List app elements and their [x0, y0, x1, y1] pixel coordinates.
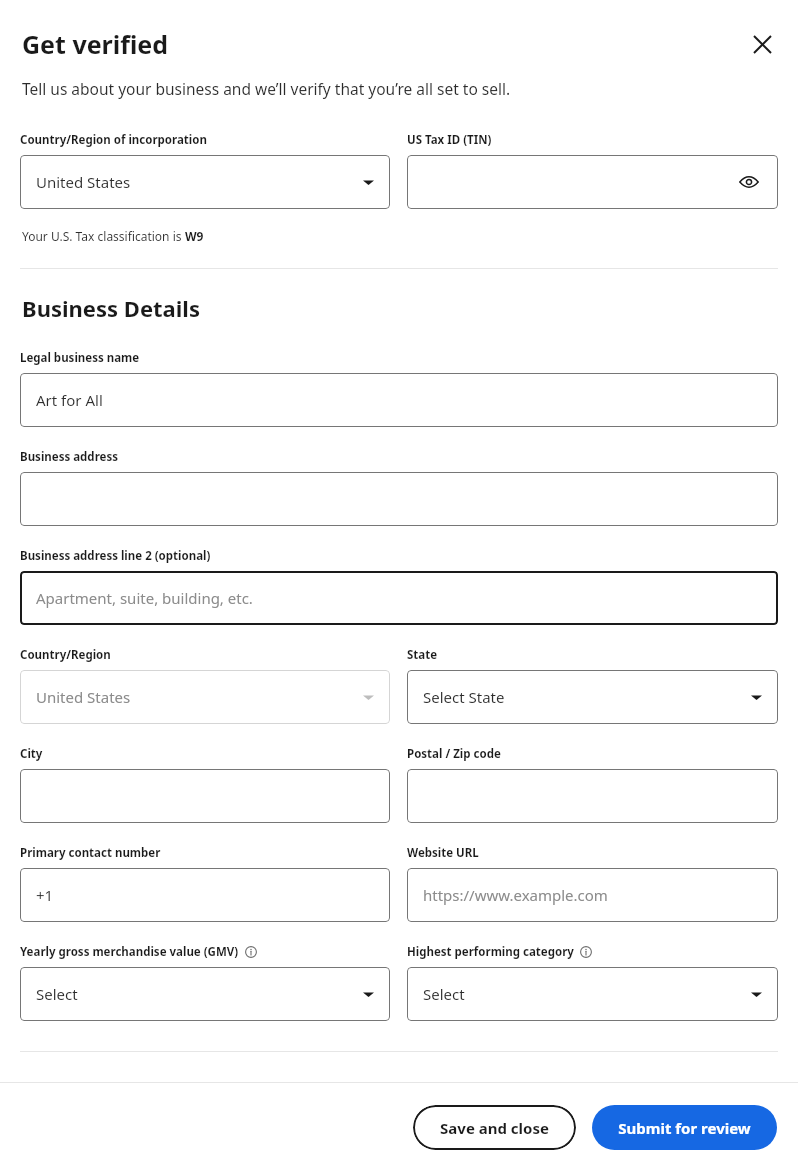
staticText: Submit for review — [618, 1118, 751, 1138]
button[interactable]: United States — [20, 155, 390, 209]
button[interactable]: Select — [20, 967, 390, 1021]
button[interactable] — [20, 472, 778, 526]
staticText: Tell us about your business and we’ll ve… — [22, 78, 511, 99]
staticText: Highest performing category — [407, 944, 574, 960]
staticText: Your U.S. Tax classification is — [22, 228, 185, 244]
staticText: Art for All — [36, 390, 103, 410]
staticText: Country/Region of incorporation — [20, 132, 207, 148]
button[interactable]: Close — [740, 22, 784, 66]
staticText: Website URL — [407, 845, 479, 861]
button[interactable]: Save and close — [413, 1105, 576, 1150]
button[interactable] — [20, 769, 390, 823]
staticText: United States — [36, 687, 131, 707]
staticText: Get verified — [22, 27, 169, 61]
staticText: Business Details — [22, 293, 200, 323]
staticText: https://www.example.com — [423, 885, 608, 905]
staticText: Yearly gross merchandise value (GMV) — [20, 944, 239, 960]
button[interactable]: https://www.example.com — [407, 868, 778, 922]
button[interactable]: Show tax ID — [407, 155, 778, 209]
button[interactable]: Show tax ID — [736, 169, 762, 195]
button[interactable]: Submit for review — [592, 1105, 777, 1150]
button[interactable] — [407, 769, 778, 823]
staticText: Select — [423, 984, 465, 1004]
staticText: Business address line 2 (optional) — [20, 548, 211, 564]
staticText: W9 — [185, 228, 204, 244]
staticText: Apartment, suite, building, etc. — [36, 588, 253, 608]
button[interactable]: +1 — [20, 868, 390, 922]
button[interactable]: Art for All — [20, 373, 778, 427]
staticText: City — [20, 746, 43, 762]
staticText: United States — [36, 172, 131, 192]
button[interactable]: Apartment, suite, building, etc. — [20, 571, 778, 625]
staticText: Business address — [20, 449, 118, 465]
button[interactable]: Select — [407, 967, 778, 1021]
button[interactable]: United States — [20, 670, 390, 724]
staticText: US Tax ID (TIN) — [407, 132, 492, 148]
staticText: Select State — [423, 687, 505, 707]
staticText: Legal business name — [20, 350, 140, 366]
staticText: Country/Region — [20, 647, 111, 663]
staticText: Postal / Zip code — [407, 746, 501, 762]
staticText: Save and close — [440, 1118, 549, 1138]
button[interactable]: Select State — [407, 670, 778, 724]
staticText: Primary contact number — [20, 845, 161, 861]
staticText: Select — [36, 984, 78, 1004]
staticText: +1 — [36, 885, 54, 905]
staticText: State — [407, 647, 438, 663]
